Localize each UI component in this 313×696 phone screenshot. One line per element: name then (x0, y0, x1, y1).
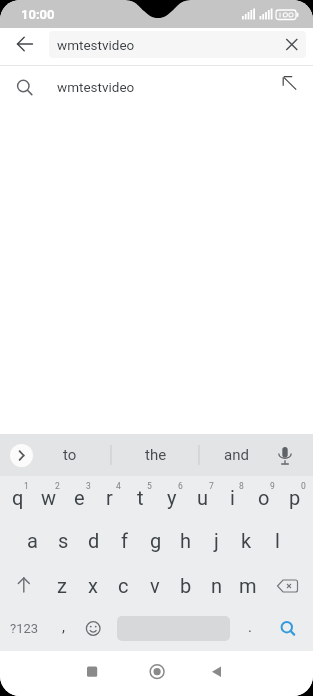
button[interactable]: r (94, 476, 125, 519)
button[interactable] (142, 656, 172, 686)
staticText: s (58, 529, 69, 552)
button[interactable]: w (33, 476, 64, 519)
button[interactable] (77, 656, 107, 686)
staticText: 5 (147, 481, 152, 491)
button[interactable]: j (201, 519, 232, 562)
button[interactable] (274, 28, 310, 61)
staticText: 1 (24, 481, 29, 491)
staticText: 10:00 (21, 7, 55, 22)
staticText: . (248, 618, 252, 636)
staticText: 3 (86, 481, 91, 491)
staticText: f (121, 529, 128, 552)
staticText: j (214, 529, 219, 552)
button[interactable]: f (109, 519, 140, 562)
staticText: g (150, 529, 162, 552)
button[interactable]: , (48, 604, 79, 649)
button[interactable]: v (139, 564, 170, 606)
staticText: ?123 (10, 621, 39, 636)
staticText: i (230, 486, 235, 509)
button[interactable] (10, 444, 33, 467)
button[interactable]: . (234, 604, 265, 649)
button[interactable] (269, 606, 305, 651)
staticText: u (197, 486, 209, 509)
staticText: h (180, 529, 192, 552)
button[interactable]: d (78, 519, 109, 562)
button[interactable]: y (156, 476, 187, 519)
button[interactable] (8, 28, 42, 61)
staticText: b (180, 574, 192, 597)
staticText: to (63, 446, 77, 464)
button[interactable] (269, 564, 307, 606)
staticText: r (106, 486, 113, 509)
button[interactable]: z (46, 564, 77, 606)
staticText: 2 (55, 481, 60, 491)
staticText: p (289, 486, 301, 509)
staticText: m (239, 574, 257, 597)
staticText: 4 (116, 481, 121, 491)
button[interactable]: t (125, 476, 156, 519)
button[interactable]: the (126, 434, 186, 476)
button[interactable]: wmtestvideo (0, 66, 313, 107)
staticText: 0 (301, 481, 306, 491)
staticText: t (137, 486, 144, 509)
button[interactable]: i (217, 476, 248, 519)
button[interactable]: e (64, 476, 95, 519)
button[interactable]: q (2, 476, 33, 519)
staticText: w (41, 486, 57, 509)
button[interactable]: k (231, 519, 262, 562)
button[interactable]: m (232, 564, 263, 606)
staticText: o (258, 486, 270, 509)
button[interactable]: u (187, 476, 218, 519)
staticText: z (57, 574, 67, 597)
staticText: k (241, 529, 252, 552)
staticText: the (145, 446, 167, 464)
staticText: 6 (178, 481, 183, 491)
staticText: v (150, 574, 160, 597)
button[interactable]: c (108, 564, 139, 606)
button[interactable]: g (140, 519, 171, 562)
staticText: wmtestvideo (57, 37, 135, 53)
button[interactable]: to (40, 434, 100, 476)
button[interactable]: o (248, 476, 279, 519)
staticText: y (167, 486, 177, 509)
button[interactable]: and (206, 434, 266, 476)
staticText: 7 (209, 481, 214, 491)
button[interactable]: x (77, 564, 108, 606)
button[interactable] (6, 564, 42, 606)
button[interactable]: b (170, 564, 201, 606)
staticText: and (224, 446, 249, 464)
staticText: n (211, 574, 223, 597)
staticText: q (12, 486, 24, 509)
staticText: 8 (239, 481, 244, 491)
button[interactable]: h (170, 519, 201, 562)
staticText: c (118, 574, 129, 597)
staticText: l (275, 529, 280, 552)
button[interactable]: a (17, 519, 48, 562)
button[interactable]: ?123 (3, 606, 45, 651)
staticText: 9 (270, 481, 275, 491)
staticText: d (88, 529, 100, 552)
staticText: e (74, 486, 85, 509)
button[interactable] (202, 656, 232, 686)
button[interactable]: n (201, 564, 232, 606)
staticText: x (88, 574, 98, 597)
staticText: a (27, 529, 38, 552)
staticText: wmtestvideo (57, 79, 135, 95)
button[interactable]: p (279, 476, 310, 519)
button[interactable] (77, 606, 109, 651)
button[interactable]: l (262, 519, 293, 562)
button[interactable]: s (48, 519, 79, 562)
staticText: , (62, 618, 65, 636)
